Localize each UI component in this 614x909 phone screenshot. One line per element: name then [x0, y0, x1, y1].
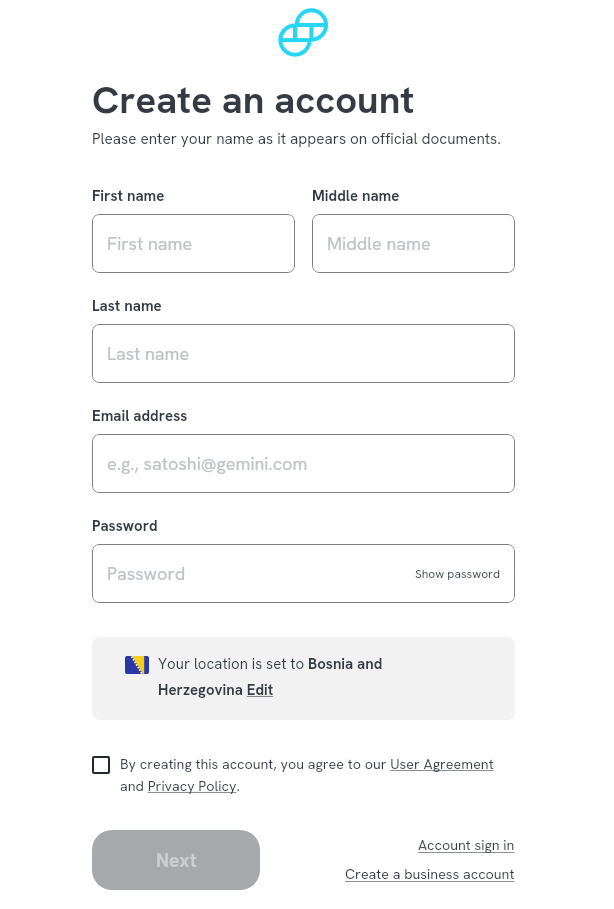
button[interactable]: Your location is set to Bosnia and Herze… — [92, 637, 515, 720]
staticText: Email address — [92, 406, 188, 426]
button[interactable]: e.g., satoshi@gemini.com — [92, 434, 515, 493]
button[interactable]: Middle name — [312, 214, 515, 273]
staticText: Last name — [92, 296, 162, 316]
staticText: By creating this account, you agree to o… — [120, 755, 498, 795]
staticText: First name — [107, 232, 193, 255]
staticText: Password — [92, 516, 158, 536]
staticText: First name — [92, 186, 165, 206]
button[interactable]: Password — [92, 544, 515, 603]
staticText: Last name — [107, 342, 190, 365]
staticText: Middle name — [327, 232, 431, 255]
staticText: Password — [107, 562, 186, 585]
staticText: e.g., satoshi@gemini.com — [107, 452, 308, 475]
staticText: Show password — [415, 566, 500, 582]
button[interactable]: Next — [92, 830, 260, 890]
staticText: Your location is set to Bosnia and Herze… — [158, 654, 408, 699]
staticText: Middle name — [312, 186, 400, 206]
button[interactable]: Create a business account — [345, 865, 515, 884]
button[interactable]: Account sign in — [418, 836, 515, 855]
button[interactable]: Agree to terms checkbox — [92, 756, 110, 774]
staticText: Next — [156, 848, 197, 873]
button[interactable]: Last name — [92, 324, 515, 383]
button[interactable]: First name — [92, 214, 295, 273]
staticText: Create an account — [92, 75, 415, 125]
staticText: Please enter your name as it appears on … — [92, 129, 501, 149]
